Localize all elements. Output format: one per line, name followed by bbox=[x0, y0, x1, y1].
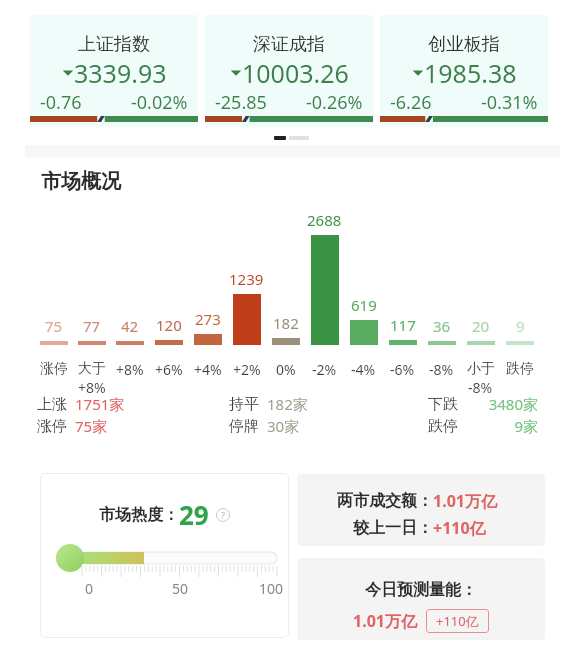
staticText: 619 bbox=[351, 295, 377, 315]
staticText: 市场概况 bbox=[41, 169, 121, 194]
staticText: +110亿 bbox=[436, 612, 479, 630]
staticText: 市场热度： bbox=[99, 505, 179, 525]
staticText: 2688 bbox=[307, 210, 342, 230]
staticText: 下跌 bbox=[428, 395, 458, 414]
staticText: 1751家 bbox=[75, 394, 125, 414]
button[interactable]: 跌停 bbox=[428, 416, 538, 436]
staticText: 100 bbox=[259, 579, 284, 598]
staticText: 273 bbox=[195, 309, 221, 329]
staticText: 跌停 bbox=[428, 417, 458, 436]
staticText: -0.31% bbox=[481, 90, 538, 115]
button[interactable]: 深证成指 bbox=[205, 15, 373, 127]
staticText: -25.85 bbox=[215, 90, 267, 115]
button[interactable]: 上涨 bbox=[37, 394, 147, 414]
staticText: +8% bbox=[116, 360, 144, 379]
staticText: 大于 bbox=[78, 360, 106, 378]
staticText: ? bbox=[221, 509, 225, 521]
staticText: 3339.93 bbox=[74, 56, 167, 90]
staticText: -0.26% bbox=[306, 90, 363, 115]
staticText: 创业板指 bbox=[428, 33, 500, 56]
staticText: 1.01万亿 bbox=[433, 490, 505, 512]
button[interactable]: 停牌 bbox=[229, 416, 339, 436]
staticText: 10003.26 bbox=[242, 56, 349, 90]
staticText: 36 bbox=[433, 316, 451, 336]
staticText: 1.01万亿 bbox=[353, 610, 417, 632]
staticText: 3480家 bbox=[466, 394, 538, 414]
staticText: 75 bbox=[45, 316, 63, 336]
staticText: 9 bbox=[516, 316, 525, 336]
staticText: 今日预测量能： bbox=[365, 580, 477, 600]
staticText: 182家 bbox=[267, 394, 308, 414]
staticText: -4% bbox=[351, 360, 376, 379]
staticText: 30家 bbox=[267, 416, 300, 436]
staticText: 持平 bbox=[229, 395, 259, 414]
staticText: 跌停 bbox=[506, 360, 534, 378]
button[interactable]: 市场热度： bbox=[40, 473, 289, 638]
button[interactable]: 下跌 bbox=[428, 394, 538, 414]
button[interactable]: 涨停 bbox=[37, 416, 147, 436]
staticText: 较上一日： bbox=[337, 518, 433, 538]
button[interactable]: 今日预测量能： bbox=[297, 558, 545, 640]
staticText: 75家 bbox=[75, 416, 108, 436]
staticText: -0.76 bbox=[40, 90, 82, 115]
staticText: +4% bbox=[194, 360, 222, 379]
button[interactable]: 上证指数 bbox=[30, 15, 198, 127]
staticText: -0.02% bbox=[131, 90, 188, 115]
staticText: 20 bbox=[472, 316, 490, 336]
button[interactable]: 创业板指 bbox=[380, 15, 548, 127]
staticText: 涨停 bbox=[40, 360, 68, 378]
button[interactable]: 持平 bbox=[229, 394, 339, 414]
staticText: 小于 bbox=[467, 360, 495, 378]
staticText: 182 bbox=[273, 313, 299, 333]
staticText: +2% bbox=[233, 360, 261, 379]
staticText: 0 bbox=[85, 579, 94, 598]
button[interactable]: 帮助 bbox=[216, 508, 230, 522]
staticText: 77 bbox=[83, 316, 101, 336]
staticText: 停牌 bbox=[229, 417, 259, 436]
staticText: 上证指数 bbox=[78, 33, 150, 56]
button[interactable]: 两市成交额： bbox=[297, 474, 545, 546]
staticText: +8% bbox=[78, 378, 106, 397]
staticText: +6% bbox=[155, 360, 183, 379]
staticText: -6% bbox=[390, 360, 415, 379]
staticText: 1985.38 bbox=[424, 56, 517, 90]
staticText: +110亿 bbox=[433, 517, 505, 539]
staticText: -2% bbox=[312, 360, 337, 379]
staticText: -8% bbox=[429, 360, 454, 379]
staticText: 0% bbox=[276, 360, 296, 379]
staticText: 涨停 bbox=[37, 417, 67, 436]
staticText: 50 bbox=[172, 579, 189, 598]
staticText: 120 bbox=[156, 315, 182, 335]
staticText: 1239 bbox=[229, 269, 264, 289]
staticText: 29 bbox=[179, 497, 209, 532]
staticText: 上涨 bbox=[37, 395, 67, 414]
staticText: 两市成交额： bbox=[337, 491, 433, 511]
staticText: 深证成指 bbox=[253, 33, 325, 56]
staticText: 42 bbox=[121, 316, 139, 336]
staticText: 117 bbox=[390, 315, 416, 335]
staticText: 9家 bbox=[466, 416, 538, 436]
staticText: -8% bbox=[468, 378, 493, 397]
staticText: -6.26 bbox=[390, 90, 432, 115]
